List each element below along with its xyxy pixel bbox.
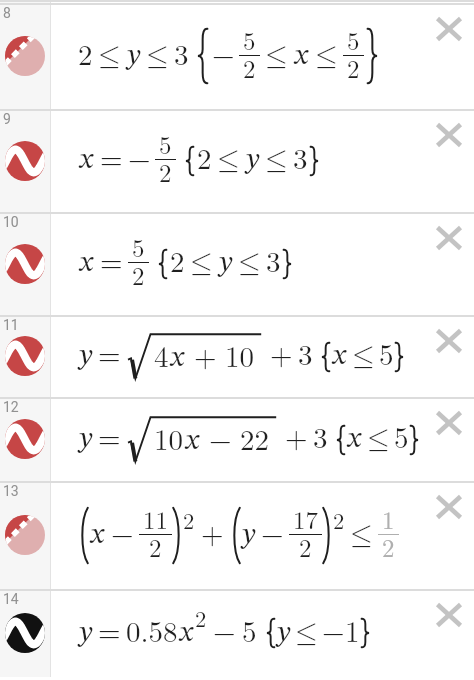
staticText: 5 <box>394 425 409 454</box>
staticText: 5 <box>243 30 256 55</box>
staticText: ≤ <box>367 425 390 454</box>
staticText: − <box>212 42 235 71</box>
staticText: 𝑦 <box>241 521 256 550</box>
staticText: 𝑦 <box>126 42 141 71</box>
staticText: 2 <box>195 609 207 632</box>
staticText: 2 <box>333 511 345 534</box>
button[interactable]: 13 <box>0 481 50 589</box>
staticText: = <box>100 146 123 175</box>
staticText: 2 <box>243 58 256 83</box>
staticText: 8 <box>3 5 11 21</box>
staticText: − <box>322 619 345 648</box>
staticText: ≤ <box>295 619 318 648</box>
staticText: + <box>285 425 308 454</box>
staticText: 3 <box>266 249 281 278</box>
staticText: = <box>98 619 121 648</box>
staticText: 5 <box>347 30 360 55</box>
staticText: 𝑥 <box>346 425 363 454</box>
button[interactable]: Delete expression <box>427 485 471 529</box>
staticText: 3 <box>298 342 313 371</box>
staticText: 4 <box>154 344 169 373</box>
staticText: ≤ <box>350 521 373 550</box>
button[interactable]: Delete expression <box>427 319 471 363</box>
staticText: − <box>128 146 151 175</box>
staticText: 10 <box>3 214 19 230</box>
staticText: 𝑦 <box>78 425 93 454</box>
button[interactable]: 14 <box>0 589 50 677</box>
staticText: ≤ <box>98 42 121 71</box>
staticText: 𝑦 <box>218 249 233 278</box>
staticText: 3 <box>293 146 308 175</box>
button[interactable]: Delete expression <box>427 7 471 51</box>
button[interactable]: 11 <box>0 315 50 397</box>
staticText: 2 <box>132 265 145 290</box>
staticText: ≤ <box>190 249 213 278</box>
button[interactable]: Delete expression <box>427 401 471 445</box>
staticText: 10 <box>154 427 184 456</box>
staticText: 𝑦 <box>245 146 260 175</box>
button[interactable]: 9 <box>0 109 50 212</box>
button[interactable]: Delete expression <box>427 113 471 157</box>
staticText: ≤ <box>146 42 169 71</box>
staticText: 𝑥 <box>184 427 201 456</box>
staticText: 𝑥 <box>293 42 310 71</box>
staticText: 17 <box>293 509 318 534</box>
staticText: 0.58 <box>126 619 178 648</box>
staticText: ≤ <box>265 42 288 71</box>
staticText: 22 <box>240 427 270 456</box>
staticText: 10 <box>225 344 255 373</box>
staticText: 𝑦 <box>276 619 291 648</box>
staticText: 2 <box>183 511 195 534</box>
staticText: + <box>201 521 224 550</box>
staticText: 14 <box>3 591 19 607</box>
staticText: 11 <box>143 509 168 534</box>
staticText: 1 <box>382 509 395 534</box>
staticText: 11 <box>3 317 19 333</box>
button[interactable]: 8 <box>0 3 50 109</box>
staticText: 12 <box>3 399 19 415</box>
staticText: ≤ <box>238 249 261 278</box>
staticText: ≤ <box>352 342 375 371</box>
staticText: 2 <box>299 537 312 562</box>
staticText: 𝑦 <box>78 342 93 371</box>
staticText: 2 <box>197 146 212 175</box>
staticText: 2 <box>347 58 360 83</box>
staticText: + <box>270 342 293 371</box>
staticText: 3 <box>174 42 189 71</box>
staticText: 𝑦 <box>78 619 93 648</box>
staticText: 𝑥 <box>78 249 95 278</box>
staticText: 2 <box>382 537 395 562</box>
staticText: 2 <box>78 42 93 71</box>
staticText: 1 <box>345 619 360 648</box>
staticText: ≤ <box>217 146 240 175</box>
staticText: 𝑥 <box>178 619 195 648</box>
staticText: 𝑥 <box>331 342 348 371</box>
button[interactable]: Delete expression <box>427 593 471 637</box>
staticText: − <box>111 521 134 550</box>
staticText: 2 <box>170 249 185 278</box>
button[interactable]: Delete expression <box>427 216 471 260</box>
staticText: = <box>98 342 121 371</box>
staticText: 5 <box>159 134 172 159</box>
staticText: 5 <box>379 342 394 371</box>
staticText: 13 <box>3 483 19 499</box>
staticText: = <box>100 249 123 278</box>
staticText: 9 <box>3 111 11 127</box>
button[interactable]: 10 <box>0 212 50 315</box>
staticText: − <box>213 619 236 648</box>
staticText: 2 <box>159 162 172 187</box>
staticText: 𝑥 <box>89 521 106 550</box>
staticText: 5 <box>242 619 257 648</box>
staticText: + <box>194 344 217 373</box>
staticText: 𝑥 <box>78 146 95 175</box>
staticText: − <box>261 521 284 550</box>
staticText: 𝑥 <box>169 344 186 373</box>
staticText: 5 <box>132 237 145 262</box>
staticText: 2 <box>149 537 162 562</box>
staticText: ≤ <box>265 146 288 175</box>
staticText: = <box>98 425 121 454</box>
staticText: ≤ <box>315 42 338 71</box>
staticText: − <box>209 427 232 456</box>
staticText: 3 <box>313 425 328 454</box>
button[interactable]: 12 <box>0 397 50 481</box>
